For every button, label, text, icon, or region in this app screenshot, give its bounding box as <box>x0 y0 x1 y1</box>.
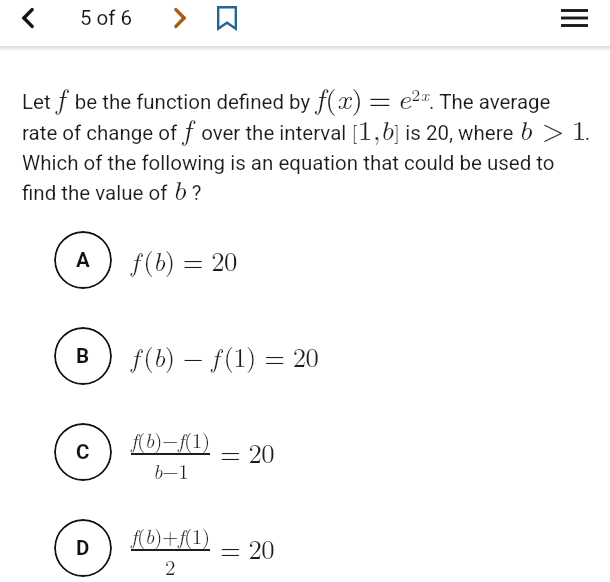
staticText: find the value of b ? <box>22 176 202 206</box>
button[interactable]: 5 of 6 <box>56 0 157 36</box>
staticText: Let f be the function defined by f(x) = … <box>22 69 551 115</box>
staticText: Which of the following is an equation th… <box>22 146 555 176</box>
button[interactable]: A <box>0 212 610 308</box>
button[interactable]: Bookmark <box>203 0 251 36</box>
staticText: D <box>76 536 90 560</box>
button[interactable]: C <box>0 404 610 500</box>
button[interactable]: D <box>0 500 610 582</box>
staticText: 5 of 6 <box>80 6 133 30</box>
staticText: B <box>76 344 90 368</box>
staticText: rate of change of f over the interval [1… <box>22 115 591 146</box>
staticText: f(b)−f(1) <box>131 425 210 454</box>
staticText: f(b)+f(1) <box>131 521 210 550</box>
staticText: = 20 <box>220 530 275 567</box>
staticText: 2 <box>165 552 176 581</box>
button[interactable]: Next question <box>157 0 203 36</box>
staticText: A <box>76 248 90 272</box>
staticText: = 20 <box>220 434 275 471</box>
staticText: f (b) = 20 <box>131 242 237 279</box>
staticText: b−1 <box>153 456 189 485</box>
button[interactable]: Menu <box>545 0 603 36</box>
button[interactable]: Previous question <box>0 0 56 36</box>
button[interactable]: B <box>0 308 610 404</box>
staticText: C <box>76 440 90 464</box>
staticText: f (b) − f (1) = 20 <box>131 338 319 375</box>
